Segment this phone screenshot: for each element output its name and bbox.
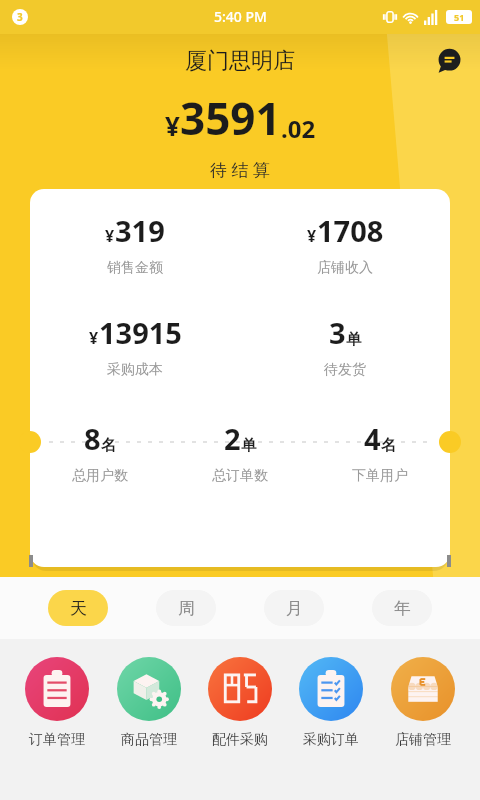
staticText: 采购订单 (303, 731, 359, 749)
button[interactable]: 配件采购 (198, 645, 282, 749)
staticText: 天 (70, 598, 87, 619)
button[interactable]: 周 (156, 590, 216, 626)
staticText: 商品管理 (121, 731, 177, 749)
button[interactable]: 天 (48, 590, 108, 626)
staticText: 下单用户 (352, 467, 408, 485)
staticText: 店铺收入 (317, 259, 373, 277)
staticText: 销售金额 (107, 259, 163, 277)
staticText: 待发货 (324, 361, 366, 379)
button[interactable]: Messages (432, 44, 466, 78)
button[interactable]: 采购订单 (289, 645, 373, 749)
staticText: 3591 (180, 88, 281, 148)
staticText: 名 (101, 436, 116, 455)
staticText: 厦门思明店 (185, 47, 295, 75)
staticText: 订单管理 (29, 731, 85, 749)
button[interactable]: 年 (372, 590, 432, 626)
staticText: 采购成本 (107, 361, 163, 379)
staticText: 1708 (317, 211, 384, 250)
staticText: 5:40 PM (214, 7, 267, 26)
staticText: 2 (224, 419, 241, 458)
staticText: .02 (281, 112, 316, 145)
button[interactable]: 店铺管理 (381, 645, 465, 749)
button[interactable]: 8 (30, 419, 170, 485)
button[interactable]: ¥ (240, 211, 450, 277)
staticText: 8 (84, 419, 101, 458)
staticText: 待 结 算 (210, 158, 270, 181)
button[interactable]: 月 (264, 590, 324, 626)
button[interactable]: ¥ (30, 313, 240, 379)
staticText: 单 (241, 436, 256, 455)
staticText: 月 (286, 598, 303, 619)
staticText: ¥ (165, 108, 180, 143)
button[interactable]: 2 (170, 419, 310, 485)
staticText: ¥ (89, 327, 99, 349)
staticText: 51 (454, 11, 465, 23)
staticText: 名 (381, 436, 396, 455)
button[interactable]: ¥ (30, 211, 240, 277)
staticText: 总用户数 (72, 467, 128, 485)
staticText: ¥ (307, 225, 317, 247)
staticText: 3 (17, 10, 23, 24)
staticText: 周 (178, 598, 195, 619)
button[interactable]: 订单管理 (15, 645, 99, 749)
staticText: 总订单数 (212, 467, 268, 485)
staticText: 319 (115, 211, 165, 250)
staticText: 4 (364, 419, 381, 458)
staticText: 店铺管理 (395, 731, 451, 749)
staticText: 年 (394, 598, 411, 619)
staticText: 3 (329, 313, 346, 352)
button[interactable]: 4 (310, 419, 450, 485)
staticText: 13915 (99, 313, 182, 352)
staticText: 配件采购 (212, 731, 268, 749)
button[interactable]: 商品管理 (107, 645, 191, 749)
staticText: 单 (346, 330, 361, 349)
button[interactable]: 3 (240, 313, 450, 379)
staticText: ¥ (105, 225, 115, 247)
